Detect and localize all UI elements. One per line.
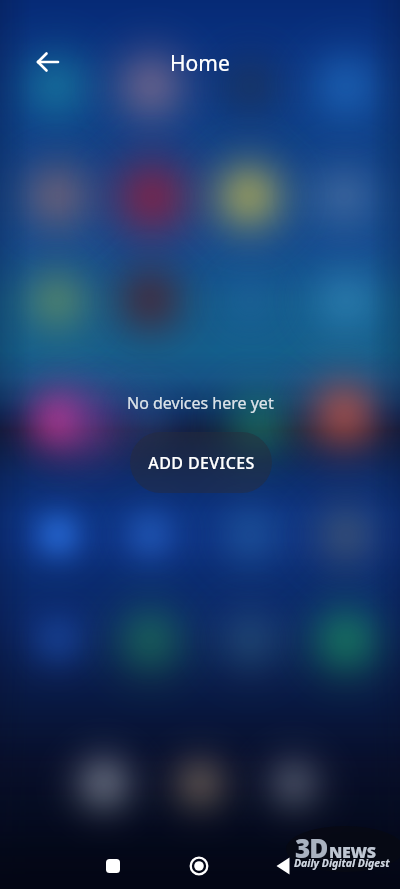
button[interactable]: Back bbox=[28, 42, 68, 82]
staticText: Home bbox=[170, 49, 230, 78]
button[interactable]: ADD DEVICES bbox=[130, 432, 272, 493]
staticText: ADD DEVICES bbox=[148, 452, 255, 474]
staticText: No devices here yet bbox=[127, 392, 274, 414]
staticText: NEWS bbox=[329, 841, 376, 863]
staticText: 3D bbox=[295, 830, 328, 865]
staticText: Daily Digital Digest bbox=[294, 856, 390, 870]
button[interactable]: Home bbox=[179, 846, 219, 886]
button[interactable]: Recent apps bbox=[93, 846, 133, 886]
button[interactable]: Back bbox=[263, 846, 303, 886]
